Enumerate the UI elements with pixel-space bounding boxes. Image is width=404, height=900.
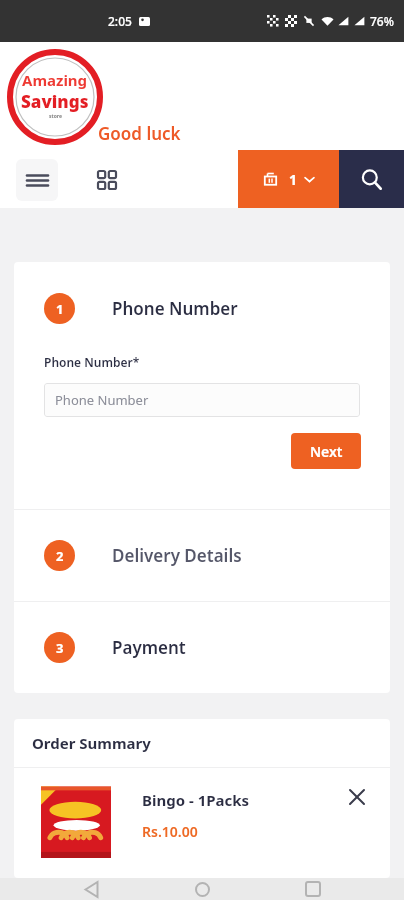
staticText: 1: [289, 170, 298, 189]
staticText: Phone Number*: [44, 354, 140, 370]
button[interactable]: Search: [339, 150, 404, 208]
staticText: Savings: [21, 90, 89, 113]
button[interactable]: Home: [182, 878, 222, 900]
staticText: Delivery Details: [112, 544, 242, 567]
staticText: 2:05: [108, 13, 132, 29]
button[interactable]: Remove item: [340, 780, 374, 814]
staticText: Order Summary: [32, 733, 151, 753]
button[interactable]: Categories: [86, 159, 128, 201]
staticText: Bingo - 1Packs: [142, 790, 250, 810]
button[interactable]: 1: [14, 262, 390, 354]
button[interactable]: Recents: [293, 878, 333, 900]
staticText: Next: [310, 442, 343, 461]
staticText: Payment: [112, 636, 186, 659]
staticText: store: [49, 113, 62, 120]
button[interactable]: Back: [71, 878, 111, 900]
staticText: 2: [56, 547, 64, 565]
staticText: Rs.10.00: [142, 822, 198, 841]
button[interactable]: Phone Number: [44, 383, 360, 417]
staticText: 1: [56, 300, 64, 318]
button[interactable]: Menu: [16, 159, 58, 201]
button[interactable]: 3: [14, 602, 390, 693]
staticText: Amazing: [22, 70, 88, 90]
button[interactable]: Bingo - 1Packs: [14, 768, 390, 878]
button[interactable]: Next: [291, 433, 361, 469]
staticText: Phone Number: [55, 391, 149, 409]
button[interactable]: 2: [14, 510, 390, 601]
staticText: Phone Number: [112, 297, 238, 320]
staticText: 76%: [370, 13, 394, 29]
staticText: 3: [56, 639, 64, 657]
staticText: Good luck: [98, 122, 181, 145]
button[interactable]: 1: [238, 150, 339, 208]
